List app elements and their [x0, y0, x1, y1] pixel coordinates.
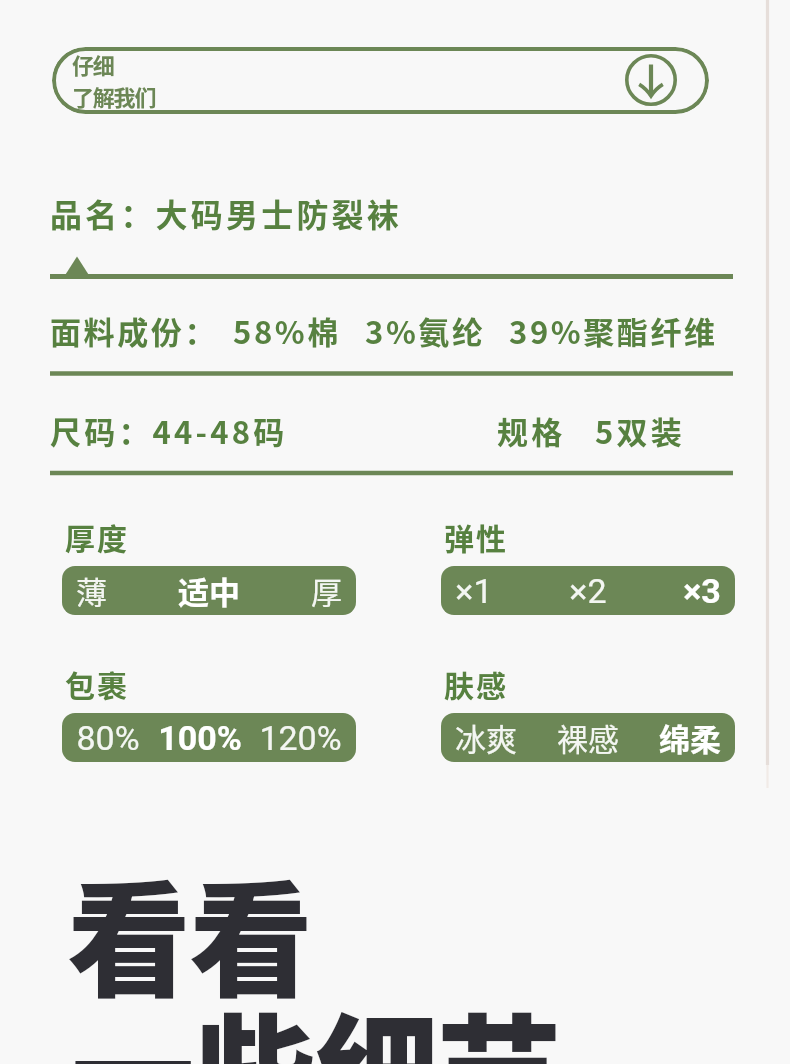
staticText: 规格: [497, 408, 566, 453]
staticText: 包裹: [65, 662, 129, 705]
staticText: 裸感: [557, 715, 619, 760]
staticText: 3%氨纶: [365, 308, 486, 353]
staticText: 薄: [76, 568, 107, 613]
staticText: 厚度: [65, 515, 129, 558]
button[interactable]: 仔细: [52, 47, 709, 114]
staticText: 一些细节: [71, 975, 560, 1064]
staticText: 80%: [76, 718, 140, 758]
staticText: 100%: [158, 718, 242, 758]
staticText: 看看: [67, 842, 312, 1022]
staticText: 冰爽: [455, 715, 517, 760]
staticText: 尺码：44-48码: [50, 408, 288, 453]
button[interactable]: ×2: [569, 571, 607, 611]
staticText: 面料成份：: [50, 308, 218, 353]
staticText: 适中: [178, 568, 240, 613]
button[interactable]: 薄: [76, 568, 107, 613]
staticText: 120%: [259, 718, 342, 758]
button[interactable]: 80%: [76, 718, 140, 758]
staticText: ×3: [683, 571, 721, 611]
button[interactable]: ×1: [455, 571, 493, 611]
button[interactable]: 适中: [178, 568, 240, 613]
staticText: ×2: [569, 571, 607, 611]
button[interactable]: 厚: [311, 568, 342, 613]
button[interactable]: 100%: [158, 718, 242, 758]
staticText: 5双装: [595, 408, 685, 453]
staticText: 了解我们: [72, 80, 156, 112]
staticText: 58%棉: [233, 308, 341, 353]
staticText: ×1: [455, 571, 493, 611]
button[interactable]: 120%: [259, 718, 342, 758]
button[interactable]: 裸感: [557, 715, 619, 760]
staticText: 仔细: [72, 48, 114, 80]
staticText: 肤感: [444, 662, 508, 705]
button[interactable]: 冰爽: [455, 715, 517, 760]
staticText: 厚: [311, 568, 342, 613]
staticText: 39%聚酯纤维: [509, 308, 718, 353]
staticText: 弹性: [444, 515, 508, 558]
button[interactable]: ×3: [683, 571, 721, 611]
staticText: 品名：大码男士防裂袜: [50, 190, 403, 236]
button[interactable]: 绵柔: [659, 715, 721, 760]
button[interactable]: Scroll down to learn more: [625, 54, 677, 106]
staticText: 绵柔: [659, 715, 721, 760]
